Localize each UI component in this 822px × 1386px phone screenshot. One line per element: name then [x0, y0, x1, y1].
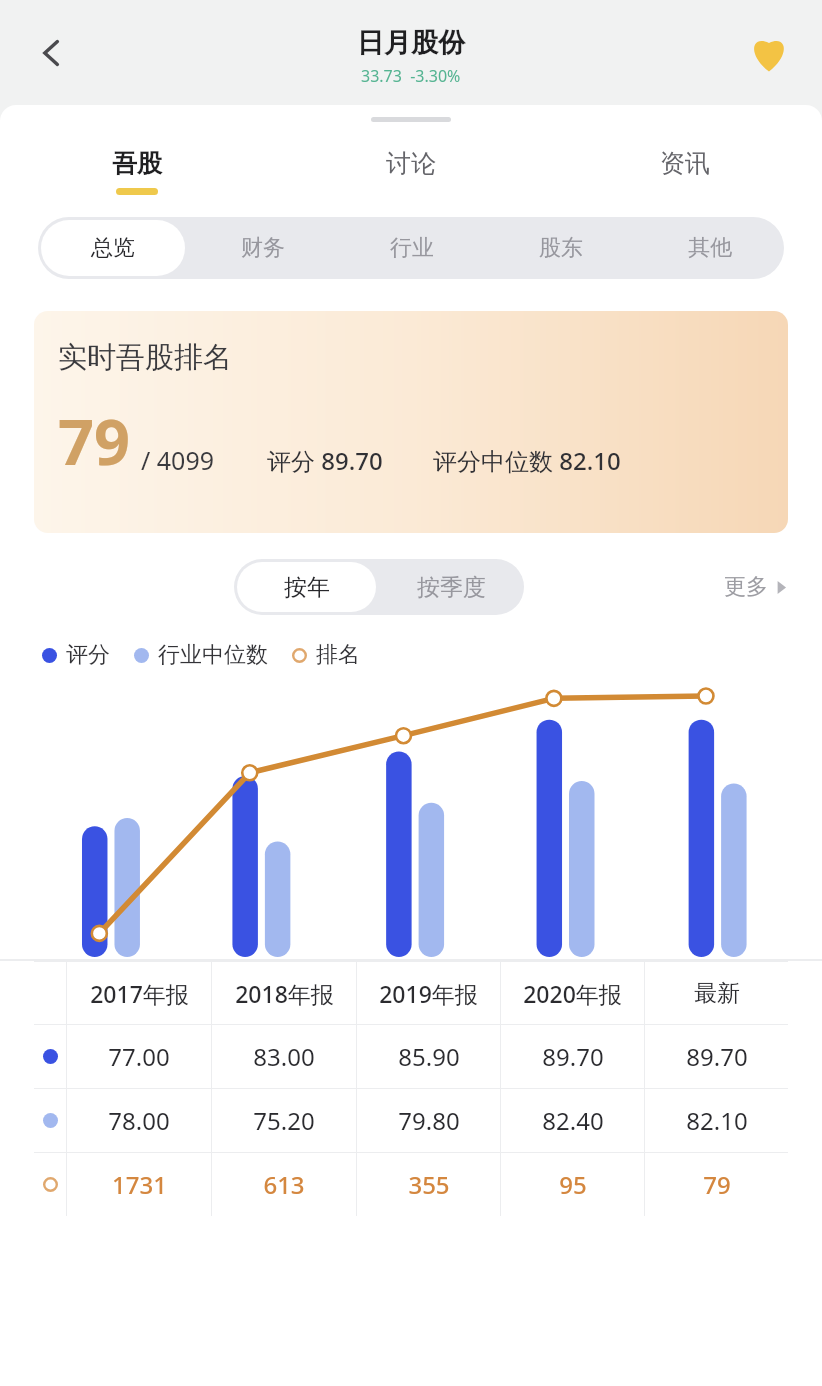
staticText: 77.00: [108, 1040, 170, 1073]
staticText: 79.80: [398, 1104, 460, 1137]
staticText: 78.00: [108, 1104, 170, 1137]
staticText: 讨论: [386, 148, 436, 179]
button[interactable]: 财务: [191, 220, 334, 276]
staticText: 2017年报: [90, 978, 189, 1009]
staticText: 79: [58, 398, 131, 484]
staticText: 实时吾股排名: [58, 339, 232, 376]
staticText: 评分: [66, 641, 110, 669]
staticText: 89.70: [686, 1040, 748, 1073]
staticText: 财务: [241, 234, 285, 262]
button[interactable]: 吾股: [0, 148, 274, 195]
button[interactable]: 行业: [340, 220, 483, 276]
staticText: 83.00: [253, 1040, 315, 1073]
staticText: 股东: [539, 234, 583, 262]
staticText: 资讯: [660, 148, 710, 179]
button[interactable]: 实时吾股排名: [34, 311, 788, 533]
staticText: / 4099: [141, 443, 215, 477]
staticText: 评分中位数 82.10: [433, 444, 621, 477]
staticText: 按季度: [417, 573, 486, 602]
button[interactable]: 更多: [724, 573, 788, 601]
button[interactable]: Back: [26, 27, 78, 79]
button[interactable]: 其他: [638, 220, 781, 276]
staticText: 行业: [390, 234, 434, 262]
staticText: 1731: [112, 1168, 167, 1201]
staticText: 79: [703, 1168, 731, 1201]
staticText: 89.70: [542, 1040, 604, 1073]
button[interactable]: 股东: [489, 220, 632, 276]
staticText: 82.40: [542, 1104, 604, 1137]
button[interactable]: Favorite: [742, 26, 796, 80]
staticText: 总览: [91, 234, 135, 262]
staticText: 最新: [694, 979, 740, 1008]
staticText: 行业中位数: [158, 641, 268, 669]
staticText: 33.73 -3.30%: [361, 65, 461, 87]
button[interactable]: 讨论: [274, 148, 548, 195]
staticText: 更多: [724, 573, 768, 601]
staticText: 排名: [316, 641, 360, 669]
staticText: 评分 89.70: [267, 444, 383, 477]
staticText: 日月股份: [357, 26, 465, 60]
button[interactable]: 总览: [41, 220, 185, 276]
button[interactable]: 资讯: [548, 148, 822, 195]
staticText: 85.90: [398, 1040, 460, 1073]
staticText: 613: [263, 1168, 305, 1201]
staticText: 75.20: [253, 1104, 315, 1137]
staticText: 按年: [284, 573, 330, 602]
staticText: 95: [559, 1168, 587, 1201]
button[interactable]: 按季度: [382, 562, 521, 612]
staticText: 355: [408, 1168, 450, 1201]
staticText: 吾股: [112, 148, 162, 179]
staticText: 2018年报: [235, 978, 334, 1009]
staticText: 82.10: [686, 1104, 748, 1137]
staticText: 其他: [688, 234, 732, 262]
staticText: 2019年报: [379, 978, 478, 1009]
staticText: 2020年报: [523, 978, 622, 1009]
button[interactable]: 按年: [237, 562, 376, 612]
